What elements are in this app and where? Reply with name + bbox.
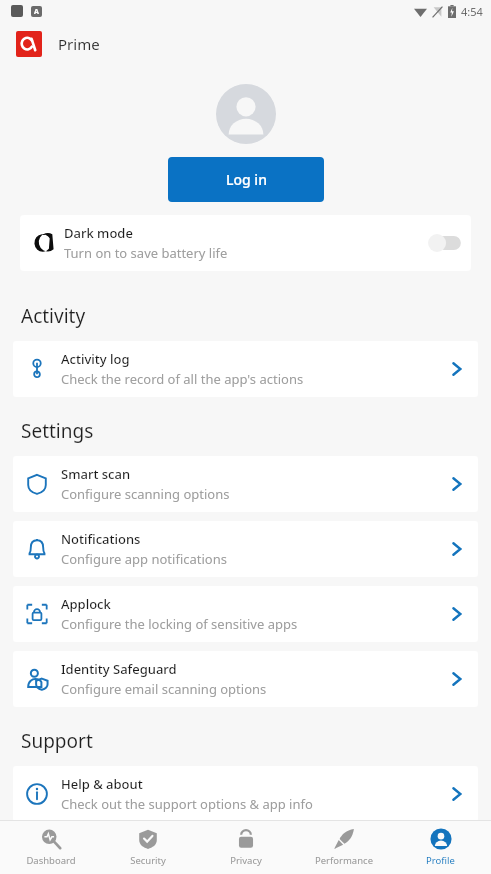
staticText: Configure scanning options xyxy=(61,485,230,503)
button[interactable]: Dashboard xyxy=(3,821,98,874)
staticText: Identity Safeguard xyxy=(61,660,177,678)
staticText: Check out the support options & app info xyxy=(61,795,313,813)
staticText: Configure email scanning options xyxy=(61,680,267,698)
staticText: Activity log xyxy=(61,350,130,368)
button[interactable]: Privacy xyxy=(198,821,293,874)
staticText: 4:54 xyxy=(461,4,483,19)
button[interactable]: Log in xyxy=(168,157,324,202)
staticText: Dashboard xyxy=(26,854,76,867)
staticText: Security xyxy=(130,854,166,867)
button[interactable]: Dark mode xyxy=(20,215,471,271)
staticText: Smart scan xyxy=(61,465,131,483)
staticText: Prime xyxy=(58,34,100,54)
staticText: Turn on to save battery life xyxy=(64,244,228,262)
staticText: Activity xyxy=(21,303,86,329)
button[interactable]: Security xyxy=(100,821,195,874)
staticText: Performance xyxy=(315,854,373,867)
staticText: Privacy xyxy=(230,854,262,867)
button[interactable]: Identity Safeguard xyxy=(13,651,478,707)
staticText: Configure app notifications xyxy=(61,550,227,568)
staticText: A xyxy=(34,7,39,17)
staticText: Settings xyxy=(21,418,94,444)
staticText: Notifications xyxy=(61,530,141,548)
staticText: Check the record of all the app's action… xyxy=(61,370,304,388)
button[interactable]: Activity log xyxy=(13,341,478,397)
button[interactable]: Performance xyxy=(296,821,391,874)
button[interactable]: Notifications xyxy=(13,521,478,577)
staticText: Help & about xyxy=(61,775,143,793)
button[interactable]: Help & about xyxy=(13,766,478,822)
button[interactable]: Profile xyxy=(393,821,488,874)
staticText: Profile xyxy=(426,854,455,867)
staticText: Dark mode xyxy=(64,224,133,242)
staticText: Support xyxy=(21,728,93,754)
staticText: Configure the locking of sensitive apps xyxy=(61,615,298,633)
button[interactable]: Dark mode toggle xyxy=(419,223,471,263)
button[interactable]: Smart scan xyxy=(13,456,478,512)
button[interactable]: Applock xyxy=(13,586,478,642)
staticText: Log in xyxy=(226,170,267,189)
staticText: Applock xyxy=(61,595,111,613)
